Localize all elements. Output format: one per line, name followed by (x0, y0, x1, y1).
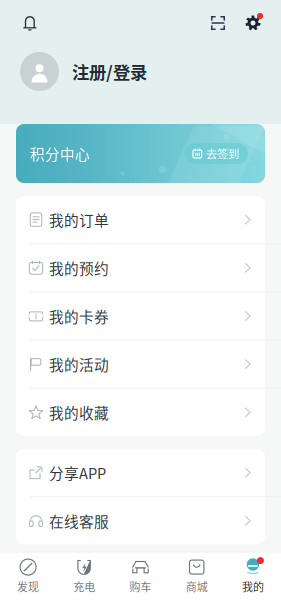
button[interactable]: 购车 (112, 552, 169, 600)
button[interactable]: 积分中心 (0, 124, 281, 183)
staticText: 去签到 (206, 145, 239, 162)
staticText: 我的卡券 (49, 305, 109, 327)
button[interactable]: 我的卡券 (16, 292, 265, 341)
staticText: 注册/登录 (72, 59, 147, 84)
button[interactable]: 我的订单 (16, 196, 265, 244)
staticText: 购车 (129, 579, 151, 594)
button[interactable]: 在线客服 (16, 497, 265, 544)
staticText: 分享APP (49, 462, 106, 483)
staticText: 我的收藏 (49, 402, 109, 423)
button[interactable]: 我的 (225, 552, 281, 600)
staticText: 在线客服 (49, 510, 109, 531)
button[interactable]: Notifications (18, 12, 42, 34)
button[interactable]: 注册/登录 (0, 34, 281, 124)
button[interactable]: Scan (207, 12, 229, 34)
button[interactable]: 我的活动 (16, 341, 265, 389)
button[interactable]: 分享APP (16, 449, 265, 497)
staticText: 商城 (186, 579, 208, 594)
staticText: 积分中心 (30, 143, 90, 164)
button[interactable]: 商城 (169, 552, 225, 600)
button[interactable]: 发现 (0, 552, 56, 600)
staticText: 充电 (73, 579, 95, 594)
button[interactable]: Settings (229, 12, 264, 34)
staticText: 我的预约 (49, 257, 109, 278)
staticText: 发现 (17, 579, 39, 594)
button[interactable]: 充电 (56, 552, 112, 600)
staticText: 我的活动 (49, 354, 109, 375)
staticText: 我的 (242, 579, 264, 594)
staticText: 我的订单 (49, 209, 109, 230)
button[interactable]: 我的预约 (16, 244, 265, 292)
button[interactable]: 我的收藏 (16, 389, 265, 436)
